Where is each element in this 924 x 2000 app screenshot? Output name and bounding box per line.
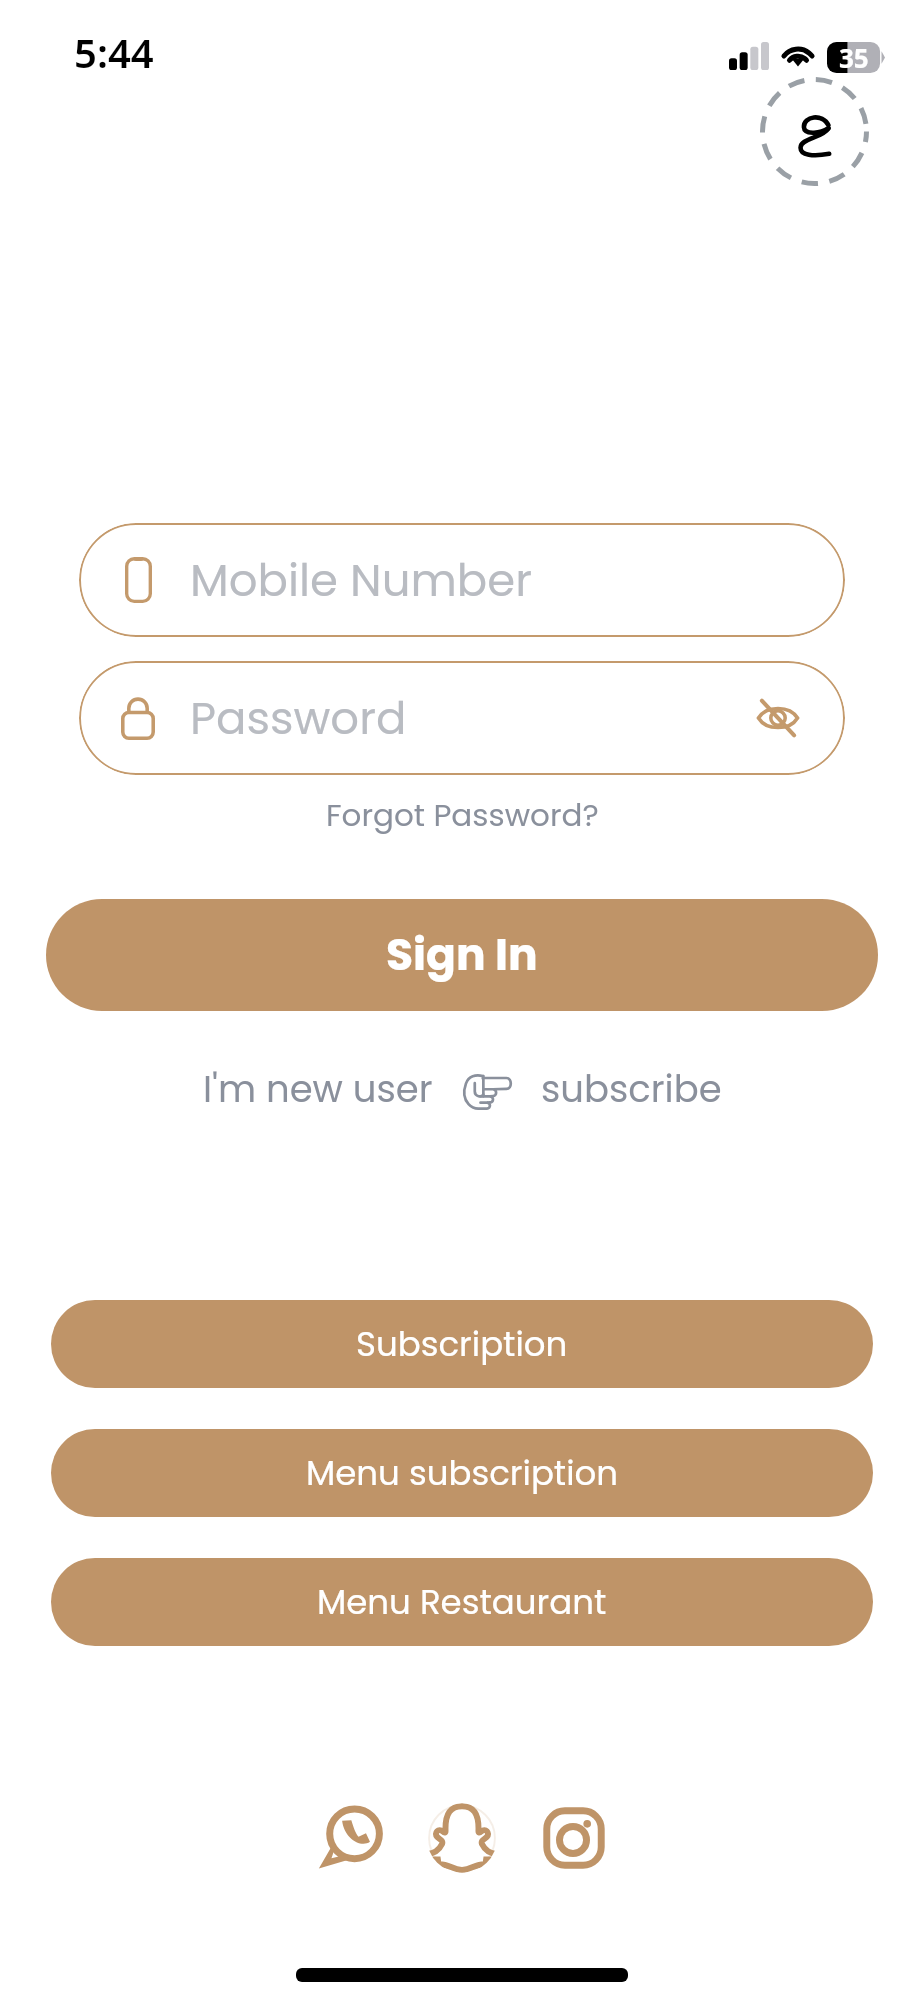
button[interactable]: Password — [79, 661, 845, 775]
button[interactable]: Forgot Password? — [320, 787, 605, 842]
button[interactable]: Snapchat — [424, 1800, 500, 1876]
staticText: 35 — [839, 40, 869, 75]
staticText: I'm new user — [203, 1063, 433, 1115]
button[interactable]: WhatsApp — [312, 1800, 388, 1876]
staticText: Menu subscription — [306, 1449, 619, 1497]
button[interactable]: Mobile Number — [79, 523, 845, 637]
button[interactable]: Menu subscription — [51, 1429, 873, 1517]
button[interactable]: Instagram — [536, 1800, 612, 1876]
staticText: Menu Restaurant — [317, 1578, 607, 1626]
staticText: Password — [190, 687, 407, 750]
button[interactable]: subscribe — [541, 1063, 722, 1115]
staticText: Sign In — [386, 924, 538, 986]
staticText: subscribe — [541, 1063, 722, 1115]
staticText: Forgot Password? — [326, 793, 599, 836]
button[interactable]: Show password — [749, 689, 807, 747]
staticText: Mobile Number — [190, 549, 532, 612]
button[interactable]: Subscription — [51, 1300, 873, 1388]
button[interactable]: Profile — [760, 77, 869, 186]
staticText: 5:44 — [74, 25, 154, 79]
button[interactable]: Menu Restaurant — [51, 1558, 873, 1646]
button[interactable]: Sign In — [46, 899, 878, 1011]
staticText: Subscription — [356, 1320, 568, 1368]
